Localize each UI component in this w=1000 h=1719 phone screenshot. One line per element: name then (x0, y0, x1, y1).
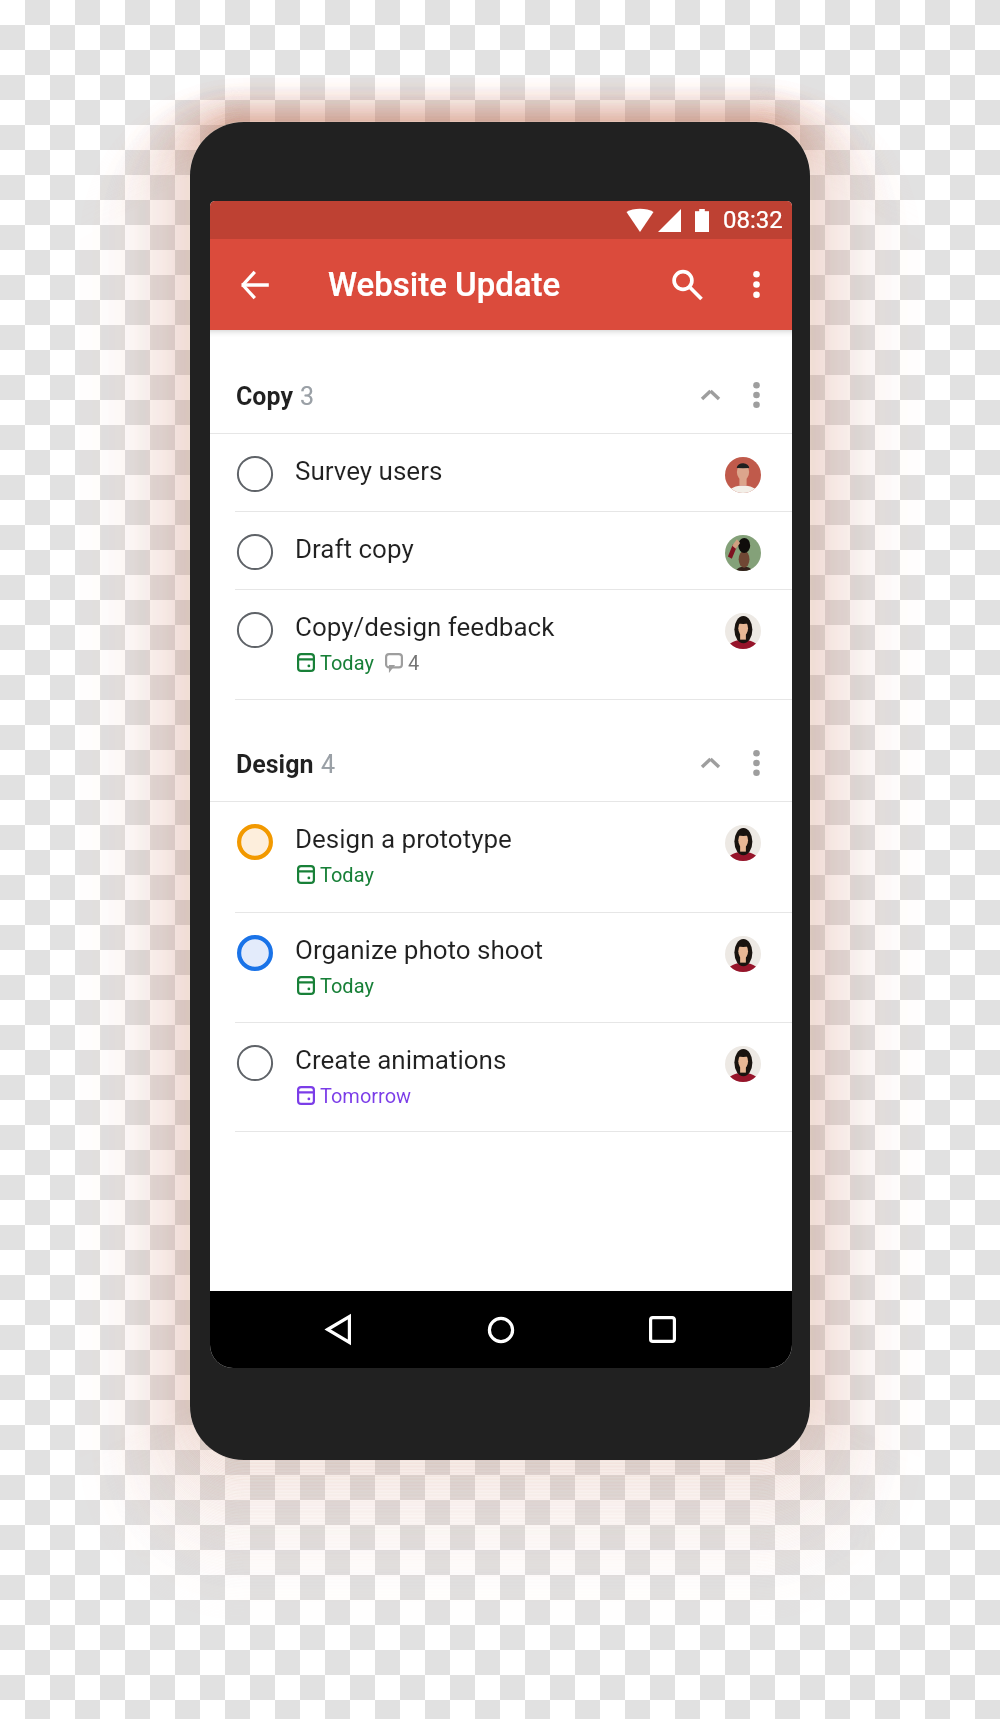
staticText: 4 (408, 651, 420, 674)
staticText: Tomorrow (320, 1084, 412, 1107)
staticText: Organize photo shoot (295, 935, 543, 965)
button[interactable]: Mark Organize photo shoot complete (233, 931, 277, 975)
button[interactable]: Back (226, 239, 284, 330)
button[interactable]: Mark Create animations complete (233, 1041, 277, 1085)
staticText: Today (320, 863, 374, 886)
button[interactable]: Mark Draft copy complete (233, 530, 277, 574)
button[interactable]: Mark Create animations complete (210, 1023, 792, 1131)
staticText: Create animations (295, 1045, 507, 1075)
button[interactable]: Collapse section (682, 356, 738, 433)
button[interactable]: More options (738, 356, 775, 433)
staticText: 08:32 (723, 206, 783, 234)
button[interactable]: More options (728, 239, 785, 330)
button[interactable]: Back (299, 1291, 379, 1368)
button[interactable]: Recent apps (622, 1291, 702, 1368)
staticText: 3 (300, 382, 315, 411)
button[interactable]: Design (210, 724, 792, 801)
button[interactable]: Home (461, 1291, 541, 1368)
button[interactable]: Mark Draft copy complete (210, 512, 792, 589)
staticText: Today (320, 974, 374, 997)
staticText: Design (236, 750, 314, 779)
button[interactable]: Mark Design a prototype complete (233, 820, 277, 864)
button[interactable]: Mark Copy/design feedback complete (210, 590, 792, 699)
button[interactable]: Copy (210, 356, 792, 433)
button[interactable]: Mark Survey users complete (233, 452, 277, 496)
staticText: 4 (321, 750, 336, 779)
button[interactable]: Search (648, 239, 720, 330)
button[interactable]: Mark Organize photo shoot complete (210, 913, 792, 1022)
staticText: Copy/design feedback (295, 612, 555, 642)
staticText: Website Update (328, 265, 561, 304)
button[interactable]: More options (738, 724, 775, 801)
staticText: Survey users (295, 456, 443, 486)
staticText: Design a prototype (295, 824, 512, 854)
staticText: Copy (236, 382, 293, 411)
staticText: Draft copy (295, 534, 414, 564)
staticText: Today (320, 651, 374, 674)
button[interactable]: Mark Copy/design feedback complete (233, 608, 277, 652)
button[interactable]: Collapse section (682, 724, 738, 801)
button[interactable]: Mark Survey users complete (210, 434, 792, 511)
button[interactable]: Mark Design a prototype complete (210, 802, 792, 912)
